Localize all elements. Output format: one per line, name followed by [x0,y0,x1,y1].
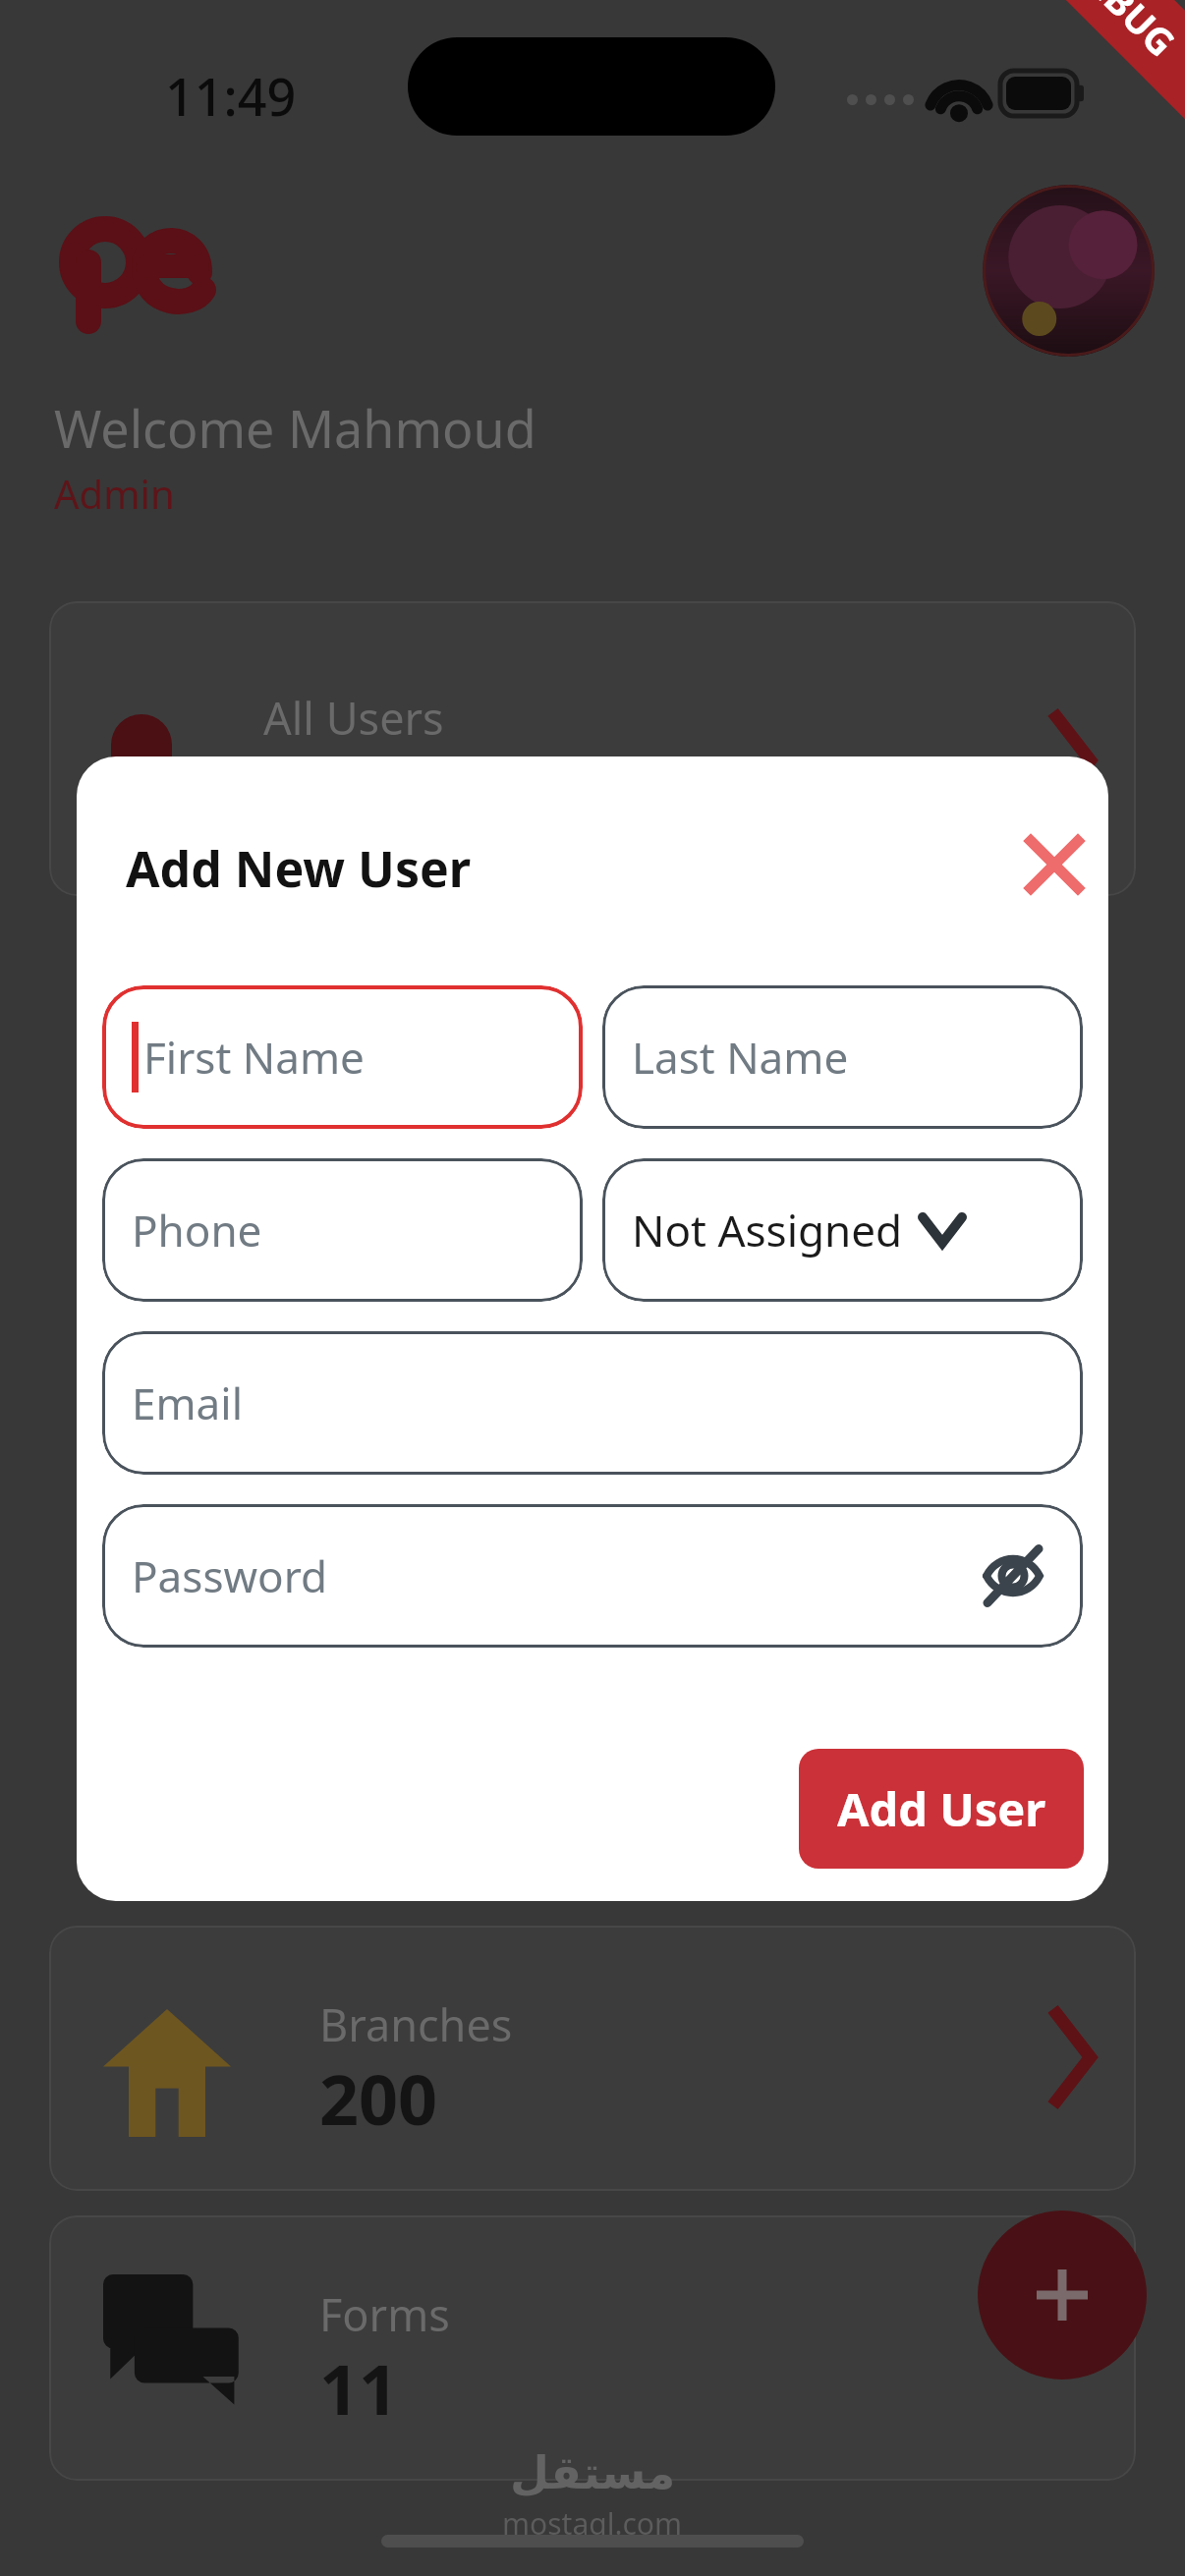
staticText: Welcome Mahmoud [54,393,536,463]
button[interactable]: Email [102,1331,1083,1475]
staticText: Phone [132,1201,262,1260]
staticText: مستقل [510,2446,676,2499]
button[interactable]: Close [1000,811,1108,919]
button[interactable]: Profile [983,185,1155,357]
staticText: Forms [319,2284,450,2344]
button[interactable]: Last Name [602,985,1083,1129]
button[interactable]: Forms [49,2215,1136,2481]
staticText: Email [132,1373,243,1432]
button[interactable]: All Users [49,601,1136,896]
button[interactable]: First Name [102,985,583,1129]
button[interactable]: Add User [799,1749,1084,1869]
staticText: All Users [263,688,444,748]
staticText: First Name [143,1028,365,1087]
button[interactable]: Branches [49,1926,1136,2191]
staticText: Admin [54,467,175,520]
staticText: mostaql.com [502,2503,683,2544]
staticText: 11 [319,2341,399,2435]
staticText: Last Name [632,1028,849,1087]
staticText: DEBUG [1060,0,1185,67]
button[interactable]: Not Assigned [602,1158,1083,1302]
staticText: 200 [319,2051,438,2145]
staticText: Not Assigned [632,1201,903,1260]
staticText: Password [132,1546,328,1605]
staticText: Add New User [126,835,472,902]
button[interactable]: Toggle password visibility [979,1541,1047,1610]
staticText: Branches [319,1994,513,2054]
button[interactable]: Add [978,2211,1147,2380]
staticText: 31 [263,749,336,834]
staticText: 11:49 [165,61,297,131]
button[interactable]: Phone [102,1158,583,1302]
staticText: Add User [837,1777,1046,1840]
button[interactable]: Password [102,1504,1083,1648]
